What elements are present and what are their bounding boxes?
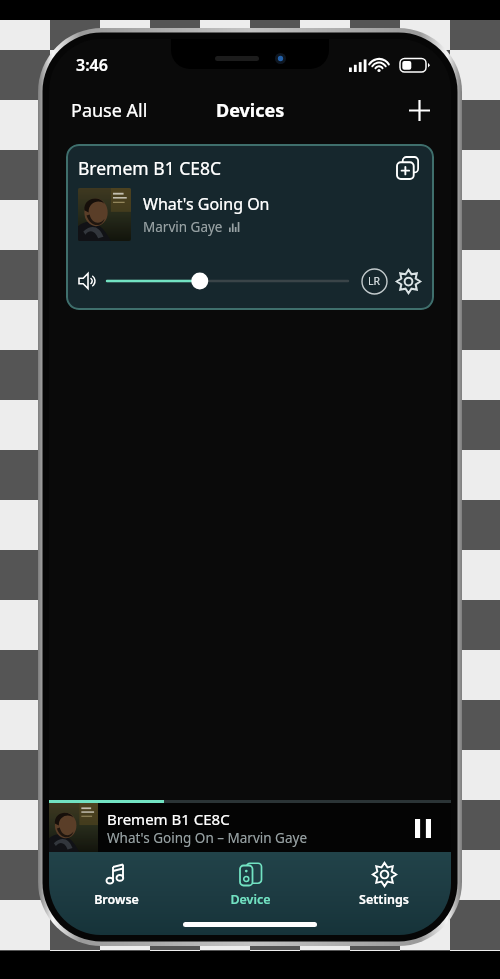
- button[interactable]: Bremem B1 CE8C: [49, 803, 451, 852]
- button[interactable]: Device: [183, 860, 317, 910]
- button[interactable]: [107, 272, 348, 290]
- button[interactable]: Settings: [317, 860, 451, 910]
- other: Mute: [78, 271, 98, 291]
- staticText: What's Going On – Marvin Gaye: [107, 829, 308, 847]
- button[interactable]: Browse: [49, 860, 183, 910]
- staticText: What's Going On: [143, 193, 270, 215]
- staticText: Marvin Gaye: [143, 218, 223, 236]
- staticText: 3:46: [76, 54, 108, 76]
- staticText: Device: [230, 891, 271, 908]
- button[interactable]: Pause: [400, 805, 446, 851]
- button[interactable]: Bremem B1 CE8C: [66, 144, 434, 310]
- staticText: Bremem B1 CE8C: [78, 156, 392, 180]
- staticText: Settings: [359, 891, 409, 908]
- button[interactable]: Add device: [388, 88, 451, 133]
- staticText: LR: [368, 274, 381, 288]
- button[interactable]: Left right channel: [359, 266, 389, 296]
- button[interactable]: Device settings: [392, 265, 424, 297]
- button[interactable]: Pause All: [49, 89, 170, 132]
- staticText: Bremem B1 CE8C: [107, 809, 230, 829]
- button[interactable]: Group speakers: [392, 152, 424, 184]
- staticText: Browse: [94, 891, 139, 908]
- staticText: Devices: [216, 98, 285, 123]
- staticText: Pause All: [71, 98, 148, 123]
